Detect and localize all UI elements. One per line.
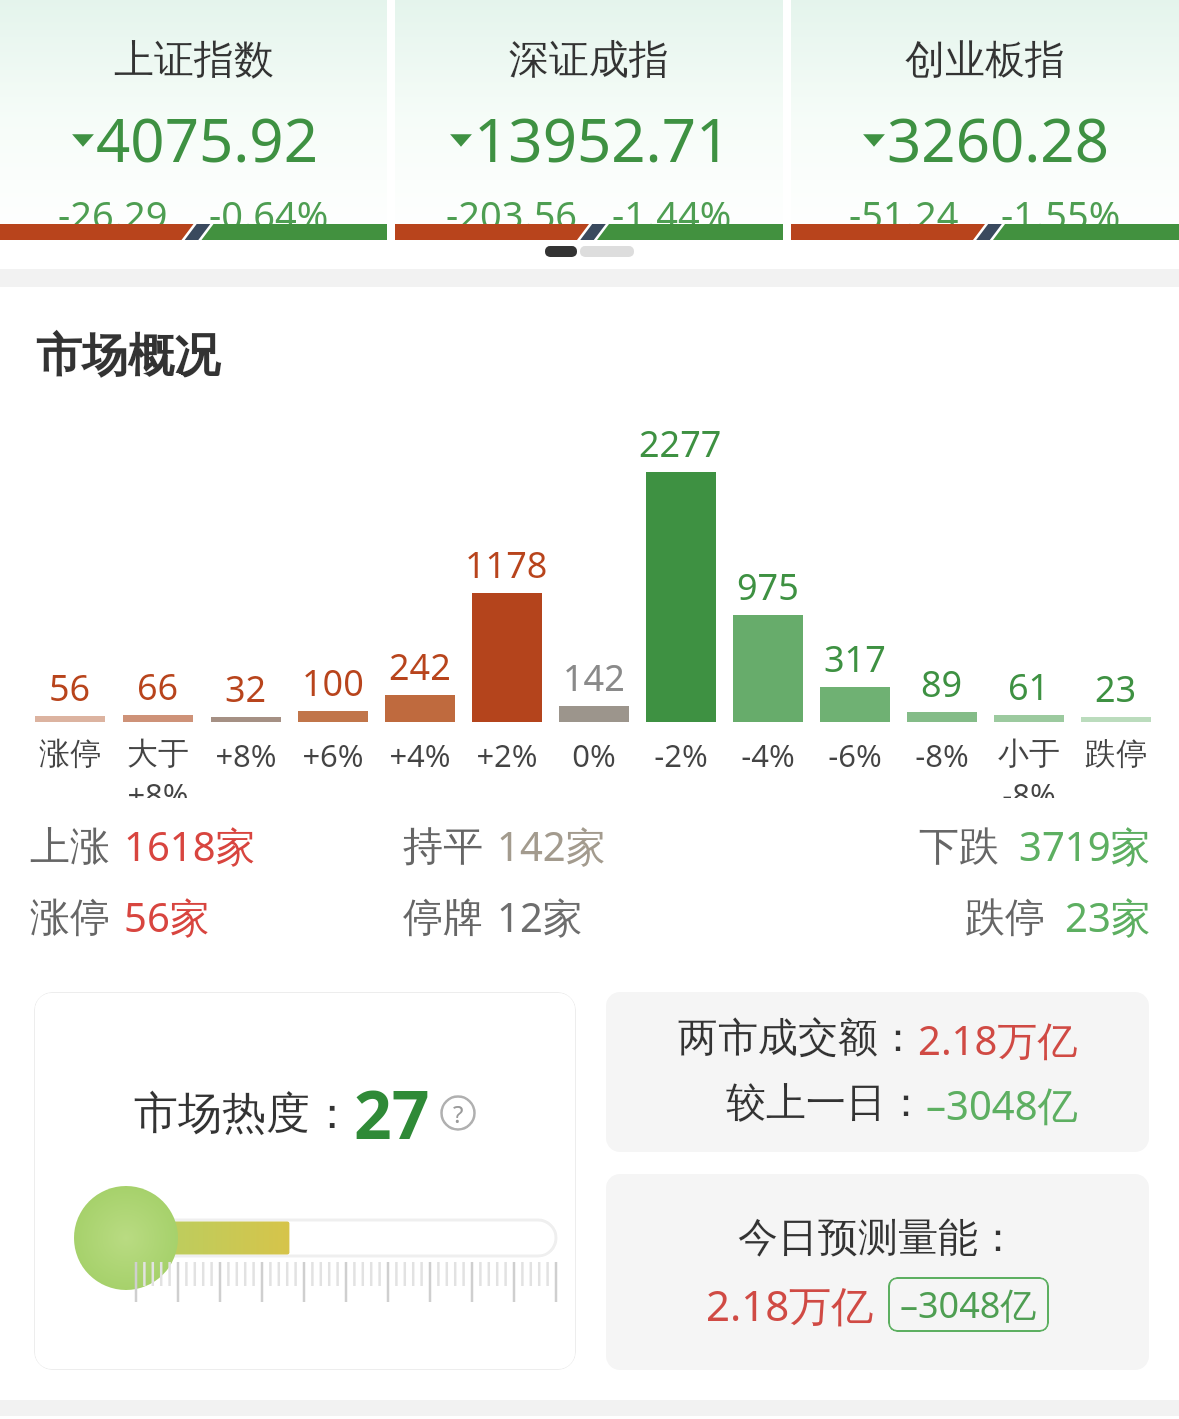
staticText: 3719家 xyxy=(1019,818,1151,873)
staticText: 1618家 xyxy=(124,818,256,873)
staticText: 3260.28 xyxy=(887,98,1109,180)
staticText: 50 xyxy=(284,1360,330,1370)
button[interactable]: 317 xyxy=(811,634,898,798)
staticText: +2% xyxy=(476,734,538,776)
staticText: 2277 xyxy=(639,419,722,468)
button[interactable]: 100 xyxy=(289,658,376,798)
staticText: 今日预测量能： xyxy=(738,1212,1018,1262)
button[interactable]: 2277 xyxy=(637,419,724,798)
staticText: 66 xyxy=(137,662,179,711)
staticText: 涨停 xyxy=(39,734,101,773)
staticText: 0% xyxy=(572,734,616,776)
staticText: 13952.71 xyxy=(474,98,731,180)
staticText: 56 xyxy=(49,663,91,712)
staticText: 上证指数 xyxy=(114,34,274,84)
button[interactable] xyxy=(580,246,634,257)
staticText: 2.18万亿 xyxy=(706,1276,874,1333)
staticText: 小于 xyxy=(998,734,1060,773)
staticText: -1.55% xyxy=(1001,188,1121,240)
staticText: -8% xyxy=(1002,773,1056,798)
staticText: 上涨 xyxy=(30,821,110,871)
staticText: -4% xyxy=(741,734,795,776)
staticText: +4% xyxy=(389,734,451,776)
staticText: –3048亿 xyxy=(926,1077,1078,1132)
button[interactable]: 61 xyxy=(985,662,1072,798)
staticText: +8% xyxy=(127,773,189,798)
staticText: 975 xyxy=(737,562,799,611)
staticText: 4075.92 xyxy=(96,98,318,180)
staticText: -8% xyxy=(915,734,969,776)
button[interactable]: 市场热度： xyxy=(34,992,576,1370)
button[interactable]: 23 xyxy=(1072,664,1159,798)
button[interactable]: 帮助 xyxy=(440,1095,476,1131)
button[interactable]: 142 xyxy=(550,653,637,798)
staticText: 317 xyxy=(824,634,886,683)
staticText: -26.29 xyxy=(58,188,168,240)
button[interactable]: 1178 xyxy=(463,540,550,798)
staticText: +6% xyxy=(302,734,364,776)
button[interactable]: 深证成指 xyxy=(395,0,783,240)
staticText: 56家 xyxy=(124,889,210,944)
staticText: 27 xyxy=(354,1068,430,1158)
staticText: 较上一日： xyxy=(726,1077,926,1127)
staticText: 32 xyxy=(225,664,267,713)
staticText: +8% xyxy=(215,734,277,776)
staticText: 跌停 xyxy=(965,892,1045,942)
staticText: -1.44% xyxy=(612,188,732,240)
button[interactable]: 今日预测量能： xyxy=(606,1174,1149,1370)
staticText: 0 xyxy=(108,1360,131,1370)
button[interactable]: 66 xyxy=(114,662,202,798)
button[interactable]: 89 xyxy=(898,659,985,798)
staticText: 创业板指 xyxy=(905,34,1065,84)
staticText: 100 xyxy=(483,1360,552,1370)
staticText: 100 xyxy=(302,658,364,707)
button[interactable]: 两市成交额： xyxy=(606,992,1149,1152)
staticText: -2% xyxy=(654,734,708,776)
staticText: 深证成指 xyxy=(509,34,669,84)
staticText: 1178 xyxy=(465,540,548,589)
staticText: 停牌 xyxy=(403,892,483,942)
staticText: –3048亿 xyxy=(900,1280,1037,1329)
staticText: 242 xyxy=(389,642,451,691)
staticText: 23 xyxy=(1095,664,1137,713)
button[interactable]: 975 xyxy=(724,562,811,798)
staticText: 下跌 xyxy=(919,821,999,871)
staticText: 两市成交额： xyxy=(678,1012,918,1062)
staticText: -6% xyxy=(828,734,882,776)
staticText: 2.18万亿 xyxy=(918,1012,1078,1067)
staticText: -203.56 xyxy=(446,188,578,240)
staticText: 涨停 xyxy=(30,892,110,942)
staticText: 142家 xyxy=(497,818,606,873)
staticText: ? xyxy=(453,1097,464,1130)
staticText: 大于 xyxy=(127,734,189,773)
staticText: 89 xyxy=(921,659,963,708)
button[interactable]: 242 xyxy=(376,642,463,798)
staticText: -51.24 xyxy=(849,188,959,240)
button[interactable]: 56 xyxy=(26,663,114,798)
button[interactable]: 创业板指 xyxy=(791,0,1179,240)
staticText: 市场热度： xyxy=(134,1086,354,1141)
staticText: 23家 xyxy=(1065,889,1151,944)
staticText: 12家 xyxy=(497,889,583,944)
button[interactable]: 上证指数 xyxy=(0,0,387,240)
button[interactable] xyxy=(545,246,577,257)
staticText: 市场概况 xyxy=(36,327,220,385)
staticText: 持平 xyxy=(403,821,483,871)
button[interactable]: 32 xyxy=(202,664,289,798)
staticText: -0.64% xyxy=(209,188,329,240)
staticText: 跌停 xyxy=(1085,734,1147,773)
staticText: 61 xyxy=(1008,662,1050,711)
staticText: 142 xyxy=(563,653,625,702)
